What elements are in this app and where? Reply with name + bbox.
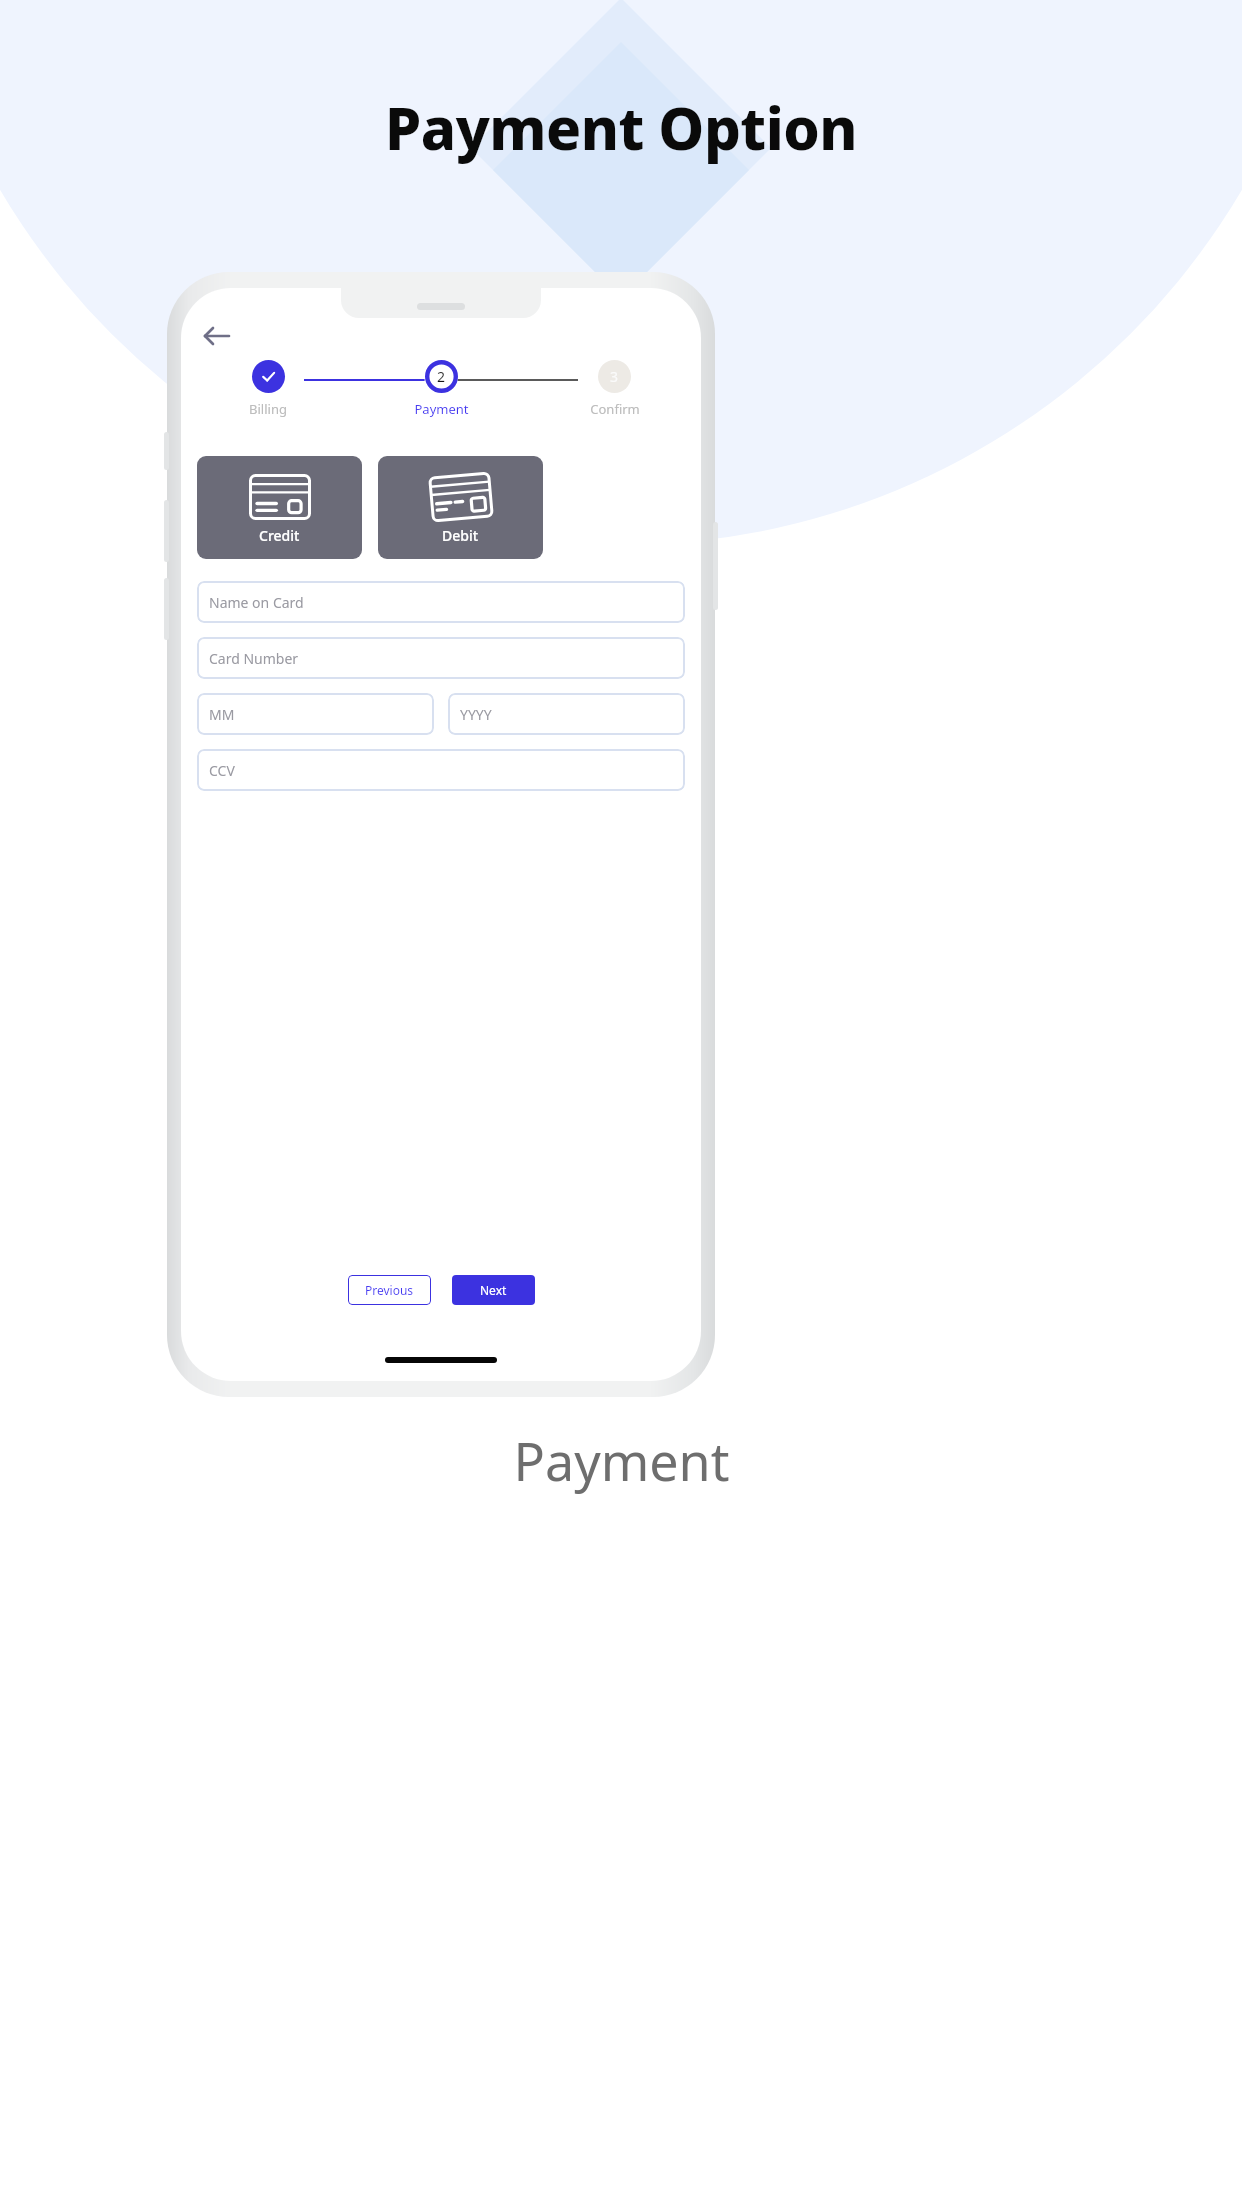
staticText: Credit [259, 526, 300, 545]
button[interactable]: YYYY [448, 693, 685, 735]
button[interactable]: Debit [378, 456, 543, 559]
button[interactable]: Name on Card [197, 581, 685, 623]
button[interactable]: Previous [348, 1275, 431, 1305]
staticText: Card Number [209, 649, 299, 668]
button[interactable]: Card Number [197, 637, 685, 679]
staticText: MM [209, 705, 235, 724]
button[interactable]: Next [452, 1275, 535, 1305]
staticText: 3 [610, 367, 619, 386]
staticText: Confirm [590, 400, 640, 418]
button[interactable]: Back [195, 314, 239, 358]
staticText: Payment Option [0, 88, 1242, 167]
staticText: Payment [513, 1425, 730, 1496]
button[interactable]: Billing [181, 360, 355, 418]
staticText: Debit [442, 526, 479, 545]
staticText: CCV [209, 761, 235, 780]
staticText: Previous [365, 1282, 414, 1298]
button[interactable]: 2 [355, 360, 528, 418]
button[interactable]: 3 [528, 360, 701, 418]
button[interactable]: MM [197, 693, 434, 735]
staticText: Next [480, 1282, 507, 1298]
staticText: Billing [249, 400, 287, 418]
staticText: YYYY [460, 705, 492, 724]
button[interactable]: Credit [197, 456, 362, 559]
staticText: Name on Card [209, 593, 304, 612]
staticText: Payment [414, 400, 469, 418]
staticText: 2 [437, 367, 446, 386]
button[interactable]: CCV [197, 749, 685, 791]
